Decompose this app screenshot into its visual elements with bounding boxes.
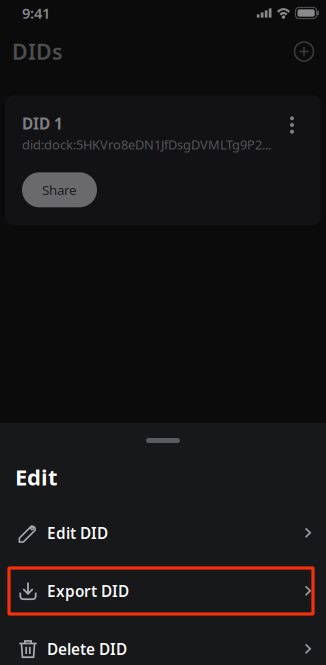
staticText: did:dock:5HKVro8eDN1JfDsgDVMLTg9P2... [22,136,271,153]
button[interactable]: Export DID [0,562,326,620]
staticText: 9:41 [22,3,50,23]
button[interactable]: Add DID [292,39,316,63]
staticText: Edit [15,462,58,492]
button[interactable]: More options [283,114,301,136]
staticText: DID 1 [22,113,63,134]
staticText: Share [42,181,77,199]
button[interactable]: Edit DID [0,504,326,562]
staticText: Export DID [47,581,129,601]
button[interactable]: Delete DID [0,620,326,665]
button[interactable]: Share [22,172,97,207]
staticText: Edit DID [47,523,108,543]
staticText: DIDs [12,37,63,66]
staticText: Delete DID [47,639,127,659]
